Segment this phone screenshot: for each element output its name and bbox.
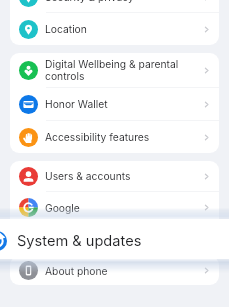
staticText: Accessibility features (45, 131, 196, 143)
staticText: Location (45, 23, 196, 35)
staticText: Digital Wellbeing & parental controls (45, 58, 196, 82)
staticText: Google (45, 202, 196, 214)
staticText: Security & privacy (45, 0, 196, 3)
button[interactable]: Location (10, 13, 219, 45)
staticText: System & updates (45, 234, 196, 246)
button[interactable]: About phone (10, 256, 219, 285)
staticText: About phone (45, 265, 196, 277)
button[interactable]: Google (10, 192, 219, 223)
staticText: Users & accounts (45, 170, 196, 182)
button[interactable]: Honor Wallet (10, 88, 219, 120)
button[interactable]: System & updates (10, 224, 219, 255)
button[interactable]: Digital Wellbeing & parental controls (10, 53, 219, 87)
button[interactable]: Accessibility features (10, 121, 219, 153)
button[interactable]: Security & privacy (10, 0, 219, 12)
button[interactable]: System & updates (0, 219, 229, 259)
staticText: System & updates (17, 232, 142, 250)
staticText: Honor Wallet (45, 98, 196, 110)
button[interactable]: Users & accounts (10, 161, 219, 191)
